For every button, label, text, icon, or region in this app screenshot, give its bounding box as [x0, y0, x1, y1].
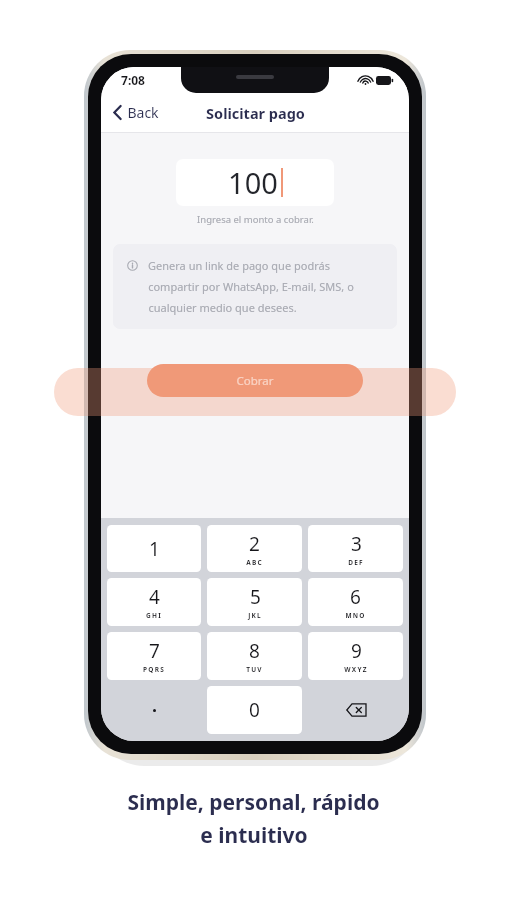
staticText: e intuitivo	[200, 821, 308, 850]
staticText: Simple, personal, rápido	[127, 788, 380, 817]
staticText: 7:08	[121, 72, 145, 88]
button[interactable]: 6	[308, 578, 403, 626]
staticText: compartir por WhatsApp, E-mail, SMS, o	[148, 279, 354, 294]
staticText: MNO	[345, 611, 366, 620]
staticText: 1	[149, 536, 160, 562]
staticText: WXYZ	[344, 665, 368, 674]
staticText: PQRS	[143, 665, 165, 674]
staticText: 9	[351, 638, 362, 664]
button[interactable]: Decimal point	[104, 683, 204, 737]
staticText: 7	[149, 638, 160, 664]
staticText: 6	[350, 584, 361, 610]
staticText: ABC	[246, 558, 263, 567]
button[interactable]: Back	[101, 97, 169, 128]
staticText: GHI	[146, 611, 162, 620]
staticText: Cobrar	[236, 373, 274, 389]
staticText: 4	[149, 584, 160, 610]
button[interactable]: 2	[207, 525, 302, 572]
staticText: cualquier medio que desees.	[148, 300, 297, 315]
staticText: 5	[250, 584, 261, 610]
button[interactable]: 9	[308, 632, 403, 680]
staticText: DEF	[348, 558, 364, 567]
staticText: TUV	[246, 665, 263, 674]
button[interactable]: 7	[107, 632, 201, 680]
button[interactable]: 1	[107, 525, 201, 572]
staticText: JKL	[248, 611, 262, 620]
button[interactable]: 8	[207, 632, 302, 680]
staticText: Solicitar pago	[206, 103, 305, 123]
button[interactable]: 100	[176, 159, 334, 206]
staticText: Genera un link de pago que podrás	[148, 258, 330, 273]
button[interactable]: Delete	[305, 683, 406, 737]
button[interactable]: 3	[308, 525, 403, 572]
button[interactable]: Cobrar	[147, 364, 363, 397]
staticText: 2	[249, 531, 260, 557]
button[interactable]: 4	[107, 578, 201, 626]
staticText: 100	[228, 163, 278, 202]
staticText: 3	[351, 531, 362, 557]
staticText: 0	[249, 697, 260, 723]
staticText: 8	[249, 638, 260, 664]
button[interactable]: Genera un link de pago que podrás	[113, 244, 397, 329]
staticText: Back	[127, 103, 159, 122]
button[interactable]: 5	[207, 578, 302, 626]
staticText: Ingresa el monto a cobrar.	[197, 213, 314, 226]
button[interactable]: 0	[207, 686, 302, 734]
